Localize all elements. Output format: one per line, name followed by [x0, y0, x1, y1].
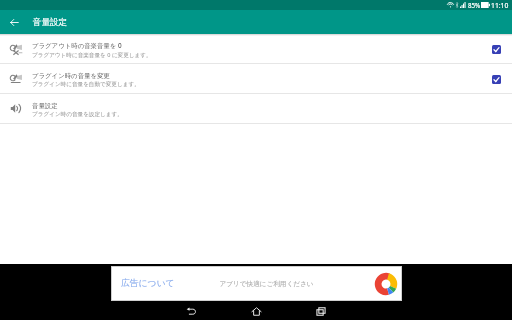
staticText: 11:10: [491, 1, 509, 10]
staticText: プラグアウト時に音楽音量を 0 に変更します。: [32, 51, 152, 59]
button[interactable]: 音量設定: [0, 94, 512, 123]
staticText: アプリで快適にご利用ください: [183, 280, 350, 288]
button[interactable]: Checkbox: [492, 75, 501, 84]
button[interactable]: 広告について: [112, 267, 401, 300]
button[interactable]: Recents: [301, 302, 341, 320]
button[interactable]: Back: [171, 302, 211, 320]
staticText: 広告について: [121, 278, 175, 289]
button[interactable]: プラグアウト時の音楽音量を 0: [0, 34, 512, 63]
staticText: プラグイン時の音量を変更: [32, 72, 110, 80]
button[interactable]: Home: [236, 302, 276, 320]
staticText: 音量設定: [32, 102, 58, 110]
staticText: 音量設定: [33, 17, 67, 28]
staticText: プラグイン時の音量を設定します。: [32, 111, 123, 118]
button[interactable]: プラグイン時の音量を変更: [0, 64, 512, 93]
button[interactable]: Back: [0, 10, 28, 34]
staticText: プラグイン時に音量を自動で変更します。: [32, 81, 140, 88]
staticText: プラグアウト時の音楽音量を 0: [32, 41, 122, 50]
staticText: 85%: [468, 1, 481, 9]
button[interactable]: Checkbox: [492, 45, 501, 54]
